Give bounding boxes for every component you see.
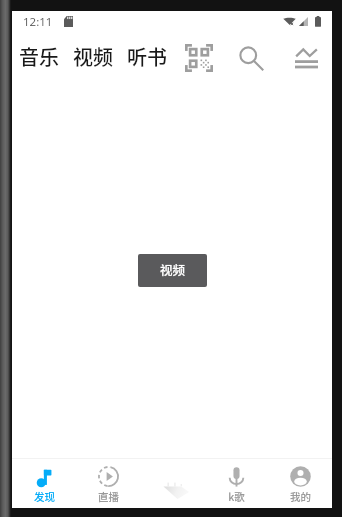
staticText: 视频: [73, 42, 113, 71]
button[interactable]: 听书: [120, 36, 174, 77]
staticText: 视频: [160, 260, 186, 278]
button[interactable]: More: [140, 458, 204, 508]
button[interactable]: Discover: [12, 458, 76, 508]
button[interactable]: Search: [231, 38, 271, 78]
staticText: 12:11: [23, 14, 53, 30]
button[interactable]: Ranking: [286, 38, 326, 78]
staticText: k歌: [228, 489, 245, 504]
staticText: 音乐: [19, 42, 59, 71]
button[interactable]: Profile: [268, 458, 332, 508]
button[interactable]: Scan QR code: [179, 38, 219, 78]
staticText: 听书: [127, 42, 167, 71]
button[interactable]: Karaoke: [204, 458, 268, 508]
staticText: 发现: [34, 489, 55, 504]
staticText: 直播: [98, 489, 119, 504]
button[interactable]: 视频: [66, 36, 120, 77]
button[interactable]: Live: [76, 458, 140, 508]
staticText: 我的: [290, 489, 311, 504]
button[interactable]: 音乐: [12, 36, 66, 77]
